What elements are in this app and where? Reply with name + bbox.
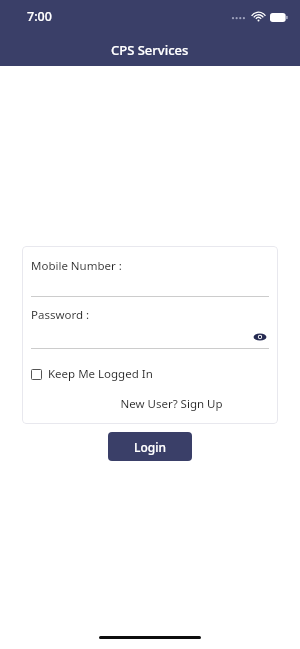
staticText: Password : bbox=[31, 307, 90, 323]
staticText: 7:00 bbox=[27, 8, 52, 25]
staticText: CPS Services bbox=[111, 41, 189, 59]
button[interactable]: Show password bbox=[251, 328, 269, 346]
staticText: Mobile Number : bbox=[31, 258, 122, 274]
button[interactable]: Keep Me Logged In bbox=[31, 366, 153, 382]
staticText: Login bbox=[134, 439, 166, 455]
button[interactable]: New User? Sign Up bbox=[120, 396, 223, 412]
button[interactable]: Login bbox=[108, 432, 192, 461]
staticText: Keep Me Logged In bbox=[48, 366, 153, 382]
